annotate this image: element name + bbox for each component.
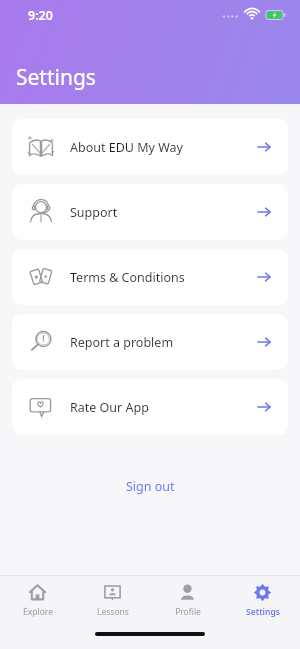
button[interactable]: Terms & Conditions (12, 249, 288, 305)
other: Open Support (256, 204, 272, 220)
button[interactable]: Sign out (112, 473, 189, 500)
other: Open Terms & Conditions (256, 269, 272, 285)
staticText: Report a problem (70, 334, 256, 351)
staticText: Settings (16, 63, 96, 92)
button[interactable]: Lessons (75, 576, 150, 624)
staticText: Terms & Conditions (70, 269, 256, 286)
staticText: Sign out (126, 478, 175, 495)
staticText: About EDU My Way (70, 139, 256, 156)
staticText: Lessons (97, 606, 129, 618)
button[interactable]: About EDU My Way (12, 119, 288, 175)
button[interactable]: Report a problem (12, 314, 288, 370)
staticText: Support (70, 204, 256, 221)
staticText: 9:20 (28, 7, 53, 24)
staticText: Profile (175, 606, 201, 618)
button[interactable]: Support (12, 184, 288, 240)
other: Open About EDU My Way (256, 139, 272, 155)
button[interactable]: Settings (225, 576, 300, 624)
staticText: Explore (23, 606, 53, 618)
button[interactable]: Profile (150, 576, 225, 624)
button[interactable]: Explore (0, 576, 75, 624)
staticText: Rate Our App (70, 399, 256, 416)
other: Open Report a problem (256, 334, 272, 350)
staticText: Settings (246, 606, 280, 618)
other: Open Rate Our App (256, 399, 272, 415)
button[interactable]: Rate Our App (12, 379, 288, 435)
